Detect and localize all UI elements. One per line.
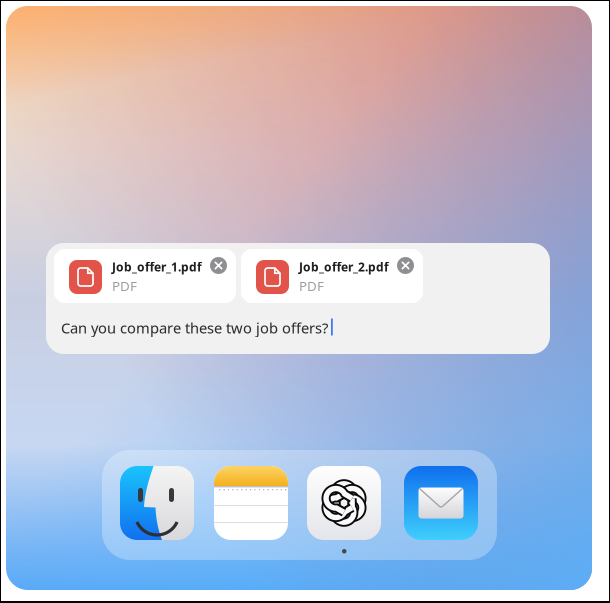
staticText: Job_offer_1.pdf bbox=[112, 259, 202, 275]
button[interactable]: Job_offer_2.pdf bbox=[241, 249, 423, 303]
button[interactable]: ChatGPT bbox=[307, 466, 381, 540]
staticText: PDF bbox=[299, 277, 324, 295]
button[interactable]: Job_offer_1.pdf bbox=[54, 249, 236, 303]
staticText: Job_offer_2.pdf bbox=[299, 259, 389, 275]
staticText: PDF bbox=[112, 277, 137, 295]
button[interactable]: Finder bbox=[120, 466, 194, 540]
button[interactable]: Notes bbox=[214, 466, 288, 540]
button[interactable]: Mail bbox=[404, 466, 478, 540]
staticText: Can you compare these two job offers? bbox=[61, 318, 328, 337]
